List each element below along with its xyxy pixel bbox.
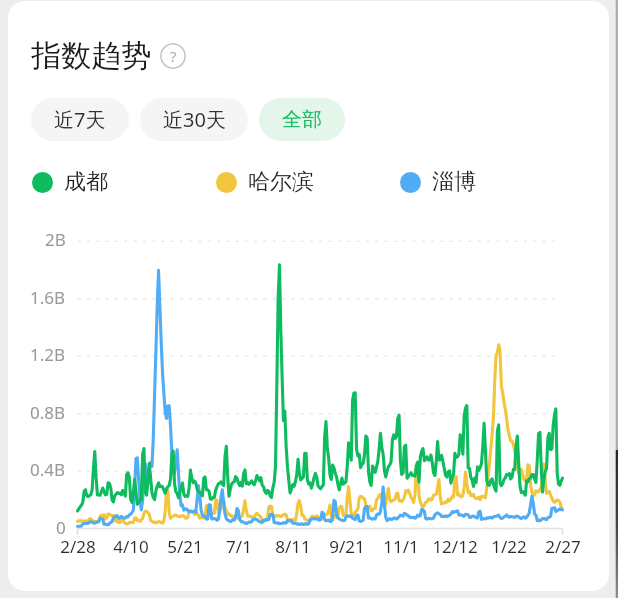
button[interactable]: 近7天 bbox=[31, 98, 129, 141]
staticText: 2/27 bbox=[545, 535, 581, 557]
staticText: 全部 bbox=[282, 107, 322, 132]
staticText: 2B bbox=[45, 228, 66, 250]
staticText: 8/11 bbox=[275, 535, 311, 557]
staticText: 近30天 bbox=[163, 106, 226, 133]
button[interactable]: 近30天 bbox=[140, 98, 248, 141]
staticText: 指数趋势 bbox=[31, 37, 151, 75]
staticText: 近7天 bbox=[54, 106, 106, 133]
button[interactable]: Help bbox=[160, 43, 186, 69]
staticText: 淄博 bbox=[432, 168, 476, 196]
staticText: ? bbox=[170, 46, 177, 66]
staticText: 7/1 bbox=[226, 535, 252, 557]
staticText: 哈尔滨 bbox=[248, 168, 314, 196]
staticText: 0.8B bbox=[30, 401, 66, 423]
staticText: 4/10 bbox=[113, 535, 149, 557]
staticText: 1.2B bbox=[30, 343, 66, 365]
staticText: 5/21 bbox=[167, 535, 203, 557]
staticText: 1.6B bbox=[30, 286, 66, 308]
staticText: 0 bbox=[56, 516, 66, 538]
staticText: 成都 bbox=[64, 168, 108, 196]
button[interactable]: 全部 bbox=[259, 98, 345, 141]
staticText: 2/28 bbox=[60, 535, 96, 557]
staticText: 0.4B bbox=[30, 458, 66, 480]
staticText: 11/1 bbox=[383, 535, 419, 557]
staticText: 9/21 bbox=[329, 535, 365, 557]
staticText: 12/12 bbox=[432, 535, 478, 557]
staticText: 1/22 bbox=[491, 535, 527, 557]
